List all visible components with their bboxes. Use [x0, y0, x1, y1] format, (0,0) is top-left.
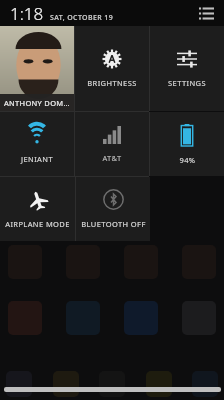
- staticText: 94%: [179, 155, 196, 165]
- staticText: ANTHONY DOMA...: [4, 98, 74, 108]
- button[interactable]: Settings: [150, 26, 224, 111]
- staticText: JENIANT: [21, 154, 53, 164]
- staticText: BLUETOOTH OFF: [81, 219, 146, 229]
- staticText: SAT, OCTOBER 19: [50, 13, 114, 23]
- staticText: AIRPLANE MODE: [5, 219, 70, 229]
- button[interactable]: Close quick settings: [4, 387, 221, 392]
- button[interactable]: Airplane mode: [0, 177, 75, 241]
- button[interactable]: Mobile network: [75, 112, 149, 176]
- button[interactable]: Notifications list: [195, 2, 217, 24]
- button[interactable]: Wi-Fi: [0, 112, 74, 176]
- staticText: AT&T: [102, 153, 122, 163]
- button[interactable]: Brightness: [75, 26, 149, 111]
- button[interactable]: ANTHONY DOMA...: [0, 26, 74, 111]
- staticText: 1:18: [10, 2, 44, 25]
- staticText: SETTINGS: [168, 78, 206, 88]
- button[interactable]: Battery: [150, 112, 224, 176]
- staticText: BRIGHTNESS: [87, 78, 137, 88]
- button[interactable]: Bluetooth: [76, 177, 150, 241]
